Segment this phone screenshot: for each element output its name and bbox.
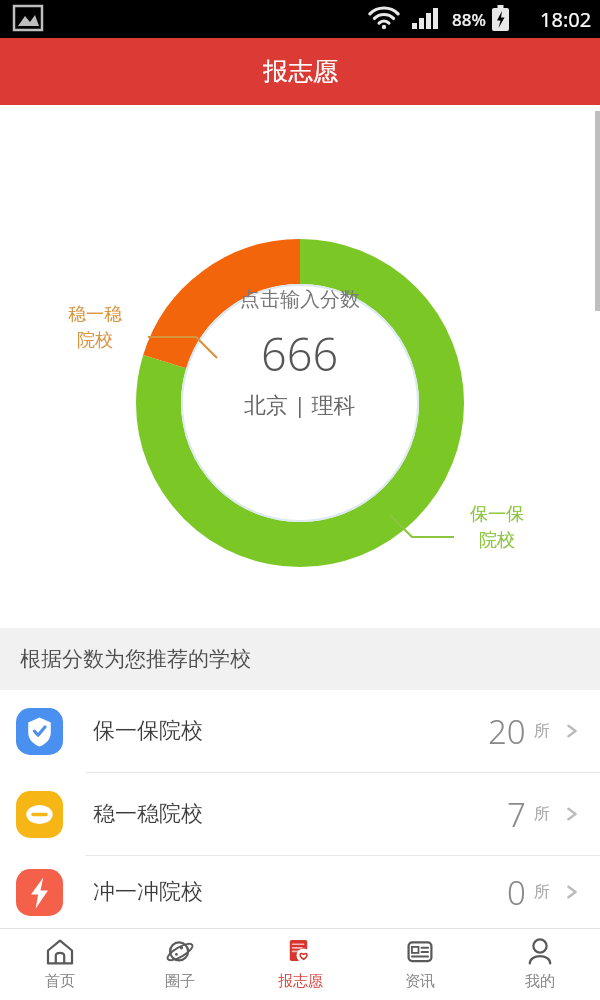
staticText: 首页 bbox=[45, 972, 75, 991]
staticText: 所 bbox=[534, 804, 550, 824]
staticText: 报志愿 bbox=[278, 972, 323, 991]
button[interactable]: 报志愿 bbox=[240, 929, 360, 1000]
button[interactable]: 点击输入分数 bbox=[184, 281, 416, 425]
button[interactable]: 资讯 bbox=[360, 929, 480, 1000]
staticText: 根据分数为您推荐的学校 bbox=[20, 646, 251, 672]
staticText: 资讯 bbox=[405, 972, 435, 991]
staticText: 88% bbox=[452, 8, 486, 31]
staticText: 稳一稳 bbox=[68, 303, 122, 326]
staticText: 圈子 bbox=[165, 972, 195, 991]
staticText: 18:02 bbox=[540, 6, 592, 33]
staticText: 我的 bbox=[525, 972, 555, 991]
button[interactable]: 圈子 bbox=[120, 929, 240, 1000]
staticText: 冲一冲院校 bbox=[93, 878, 203, 906]
button[interactable]: 首页 bbox=[0, 929, 120, 1000]
staticText: 0 bbox=[507, 870, 526, 915]
staticText: 保一保 bbox=[470, 503, 524, 526]
button[interactable]: 稳一稳院校 bbox=[0, 773, 600, 855]
staticText: 北京 | 理科 bbox=[244, 389, 356, 419]
staticText: 点击输入分数 bbox=[240, 287, 360, 312]
staticText: 院校 bbox=[77, 329, 113, 352]
staticText: 666 bbox=[261, 323, 339, 384]
staticText: 院校 bbox=[479, 529, 515, 552]
staticText: 所 bbox=[534, 721, 550, 741]
button[interactable]: 我的 bbox=[480, 929, 600, 1000]
staticText: 报志愿 bbox=[263, 56, 338, 87]
staticText: 稳一稳院校 bbox=[93, 800, 203, 828]
staticText: 所 bbox=[534, 882, 550, 902]
staticText: 20 bbox=[488, 709, 526, 754]
staticText: 7 bbox=[507, 792, 526, 837]
button[interactable]: 冲一冲院校 bbox=[0, 856, 600, 928]
button[interactable]: 保一保院校 bbox=[0, 690, 600, 772]
staticText: 保一保院校 bbox=[93, 717, 203, 745]
